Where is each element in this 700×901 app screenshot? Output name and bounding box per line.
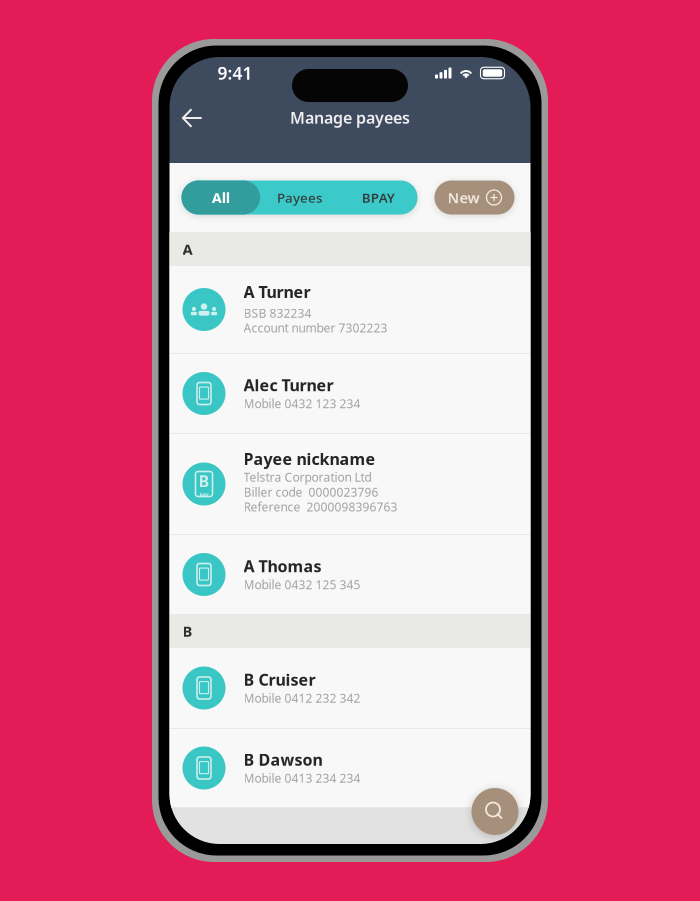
button[interactable]: Back xyxy=(169,102,214,134)
button[interactable]: B xyxy=(169,434,530,534)
staticText: Telstra Corporation Ltd xyxy=(243,469,371,485)
button[interactable]: Search xyxy=(471,788,518,835)
button[interactable]: BPAY xyxy=(339,180,417,214)
button[interactable]: Payees xyxy=(260,180,339,214)
staticText: Mobile 0432 125 345 xyxy=(243,576,360,592)
staticText: Manage payees xyxy=(290,107,410,128)
staticText: B Dawson xyxy=(243,749,322,770)
staticText: Biller code 0000023796 xyxy=(243,484,378,500)
staticText: A Turner xyxy=(243,281,310,302)
staticText: Mobile 0432 123 234 xyxy=(243,395,360,411)
staticText: New xyxy=(447,188,479,207)
staticText: B Cruiser xyxy=(243,669,315,690)
button[interactable]: A Turner xyxy=(169,266,530,353)
staticText: Payee nickname xyxy=(243,448,375,469)
staticText: B xyxy=(198,470,209,491)
staticText: Payees xyxy=(277,189,322,206)
staticText: BPAY xyxy=(362,189,395,206)
button[interactable]: All xyxy=(181,180,260,214)
button[interactable]: B Dawson xyxy=(169,729,530,807)
button[interactable]: Alec Turner xyxy=(169,354,530,433)
staticText: BSB 832234 xyxy=(243,305,311,321)
button[interactable]: New xyxy=(434,180,514,214)
staticText: Mobile 0413 234 234 xyxy=(243,770,360,786)
staticText: All xyxy=(212,188,230,207)
staticText: Alec Turner xyxy=(243,374,333,396)
staticText: PAY xyxy=(199,492,208,499)
button[interactable]: A Thomas xyxy=(169,535,530,614)
staticText: B xyxy=(182,621,192,641)
staticText: A xyxy=(182,239,192,259)
staticText: Reference 2000098396763 xyxy=(243,499,397,515)
staticText: 9:41 xyxy=(217,61,252,84)
button[interactable]: B Cruiser xyxy=(169,648,530,728)
staticText: A Thomas xyxy=(243,555,321,577)
staticText: Mobile 0412 232 342 xyxy=(243,690,360,706)
staticText: Account number 7302223 xyxy=(243,320,387,336)
